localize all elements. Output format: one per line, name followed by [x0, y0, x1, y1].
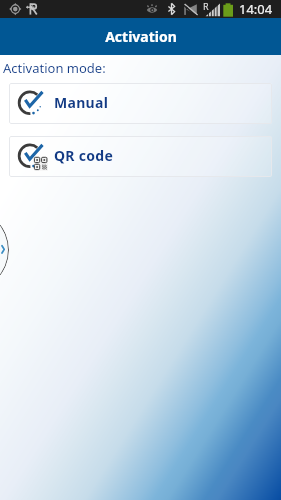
staticText: 14:04 — [239, 0, 273, 18]
staticText: R — [203, 0, 209, 12]
staticText: Activation mode: — [3, 59, 106, 77]
staticText: Activation — [105, 27, 177, 46]
button[interactable]: Manual — [9, 83, 272, 124]
staticText: Manual — [54, 93, 109, 112]
button[interactable]: Open navigation drawer — [0, 208, 9, 292]
button[interactable]: QR code — [9, 136, 272, 177]
staticText: QR code — [54, 146, 114, 165]
